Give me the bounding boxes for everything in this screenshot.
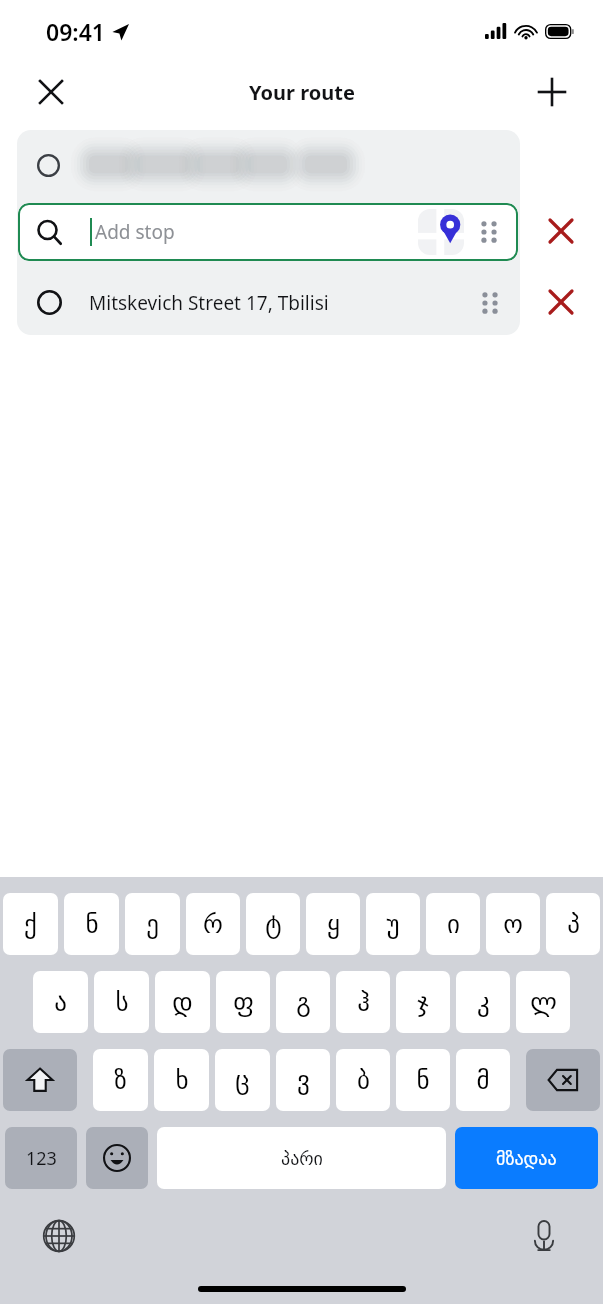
staticText: 09:41 [46, 16, 105, 47]
staticText: 123 [26, 1146, 57, 1171]
staticText: მზადაა [496, 1148, 557, 1169]
staticText: ხ [175, 1066, 189, 1095]
staticText: პ [567, 910, 580, 939]
button[interactable]: ხ [154, 1049, 209, 1111]
staticText: ო [503, 910, 523, 939]
button[interactable]: უ [366, 893, 420, 955]
button[interactable]: ტ [246, 893, 300, 955]
button[interactable]: ა [33, 971, 88, 1033]
button[interactable]: რ [186, 893, 240, 955]
button[interactable]: Remove destination [535, 276, 587, 328]
staticText: ლ [530, 988, 557, 1017]
button[interactable]: ო [486, 893, 540, 955]
button[interactable]: ყ [306, 893, 360, 955]
staticText: პარი [281, 1148, 323, 1169]
staticText: Your route [249, 79, 355, 106]
button[interactable] [17, 130, 520, 200]
staticText: ყ [327, 910, 340, 939]
staticText: ტ [265, 910, 282, 939]
button[interactable]: ბ [336, 1049, 390, 1111]
staticText: ვ [297, 1066, 310, 1095]
button[interactable]: ქ [3, 893, 58, 955]
button[interactable]: ე [125, 893, 180, 955]
staticText: Mitskevich Street 17, Tbilisi [89, 290, 329, 316]
staticText: გ [296, 988, 311, 1017]
button[interactable]: Mitskevich Street 17, Tbilisi [17, 270, 520, 335]
button[interactable]: კ [456, 971, 510, 1033]
button[interactable]: ზ [93, 1049, 148, 1111]
staticText: ნ [85, 910, 99, 939]
button[interactable]: Backspace [526, 1049, 600, 1111]
staticText: კ [477, 988, 490, 1017]
staticText: ე [146, 910, 159, 939]
button[interactable]: დ [155, 971, 210, 1033]
button[interactable]: Add stop [527, 67, 577, 117]
staticText: მ [476, 1066, 490, 1095]
button[interactable]: გ [276, 971, 330, 1033]
button[interactable]: ნ [64, 893, 119, 955]
staticText: რ [203, 910, 223, 939]
staticText: Add stop [95, 219, 175, 245]
button[interactable]: პ [546, 893, 600, 955]
staticText: ა [54, 988, 67, 1017]
button[interactable]: ვ [276, 1049, 330, 1111]
staticText: ნ [416, 1066, 430, 1095]
button[interactable]: ლ [516, 971, 570, 1033]
button[interactable]: 123 [5, 1127, 77, 1189]
button[interactable]: ფ [216, 971, 270, 1033]
staticText: ს [115, 988, 129, 1017]
button[interactable]: Add stop [18, 203, 518, 261]
button[interactable]: მ [456, 1049, 510, 1111]
button[interactable]: Dictation [521, 1213, 567, 1259]
staticText: ჯ [417, 988, 429, 1017]
button[interactable]: Remove stop [535, 205, 587, 257]
staticText: ქ [24, 910, 37, 939]
button[interactable]: მზადაა [455, 1127, 598, 1189]
staticText: ც [235, 1066, 250, 1095]
button[interactable]: Shift [3, 1049, 77, 1111]
button[interactable]: ც [215, 1049, 270, 1111]
staticText: უ [386, 910, 400, 939]
button[interactable]: Reorder stop [472, 215, 506, 249]
staticText: ჰ [357, 988, 370, 1017]
button[interactable]: ჰ [336, 971, 390, 1033]
staticText: ზ [114, 1066, 127, 1095]
staticText: დ [172, 988, 193, 1017]
button[interactable]: ნ [396, 1049, 450, 1111]
staticText: ბ [357, 1066, 370, 1095]
button[interactable]: ი [426, 893, 480, 955]
staticText: ი [447, 910, 460, 939]
button[interactable]: პარი [157, 1127, 446, 1189]
button[interactable]: ს [94, 971, 149, 1033]
button[interactable]: Emoji [86, 1127, 148, 1189]
staticText: ფ [233, 988, 254, 1017]
button[interactable]: Change keyboard language [36, 1213, 82, 1259]
button[interactable]: ჯ [396, 971, 450, 1033]
button[interactable]: Reorder stop [473, 286, 507, 320]
button[interactable]: Close [26, 67, 76, 117]
